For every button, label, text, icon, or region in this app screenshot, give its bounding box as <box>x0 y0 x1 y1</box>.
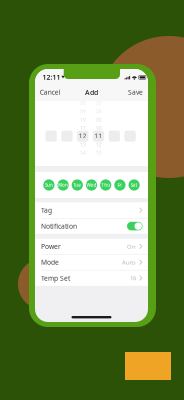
button[interactable]: Sun <box>43 179 54 191</box>
staticText: 07 <box>95 99 101 107</box>
staticText: Cancel <box>40 88 61 97</box>
staticText: 10 <box>80 116 86 123</box>
staticText: Add <box>85 87 98 97</box>
button[interactable]: Mon <box>57 179 69 191</box>
button[interactable]: Temp Set <box>35 270 148 286</box>
staticText: 08 <box>80 99 86 107</box>
staticText: Mon <box>58 182 68 188</box>
staticText: Thu <box>101 182 110 188</box>
staticText: 08 <box>95 107 101 115</box>
staticText: 11 <box>94 132 102 140</box>
staticText: 12 <box>95 141 101 148</box>
staticText: 09 <box>95 116 101 123</box>
staticText: 12 <box>79 132 87 140</box>
staticText: 14 <box>80 149 86 156</box>
staticText: Tag <box>41 206 52 215</box>
button[interactable]: Notification <box>35 218 148 234</box>
staticText: 11 <box>80 124 86 132</box>
staticText: Sat <box>131 182 138 188</box>
button[interactable]: Tag <box>35 202 148 218</box>
staticText: Fri <box>117 182 122 188</box>
staticText: Mode <box>41 258 59 267</box>
button[interactable]: Cancel <box>40 87 66 97</box>
staticText: 10 <box>95 124 101 132</box>
staticText: 12:11 <box>43 73 61 82</box>
staticText: Power <box>41 242 61 251</box>
staticText: 09 <box>80 107 86 115</box>
staticText: On <box>127 242 136 250</box>
staticText: Temp Set <box>41 273 70 283</box>
staticText: Tue <box>73 182 81 188</box>
button[interactable]: Thu <box>100 179 111 191</box>
staticText: 16 <box>130 274 136 282</box>
staticText: 13 <box>95 149 101 156</box>
button[interactable]: Fri <box>114 179 125 191</box>
button[interactable]: Power <box>35 239 148 254</box>
staticText: Sun <box>45 182 53 188</box>
button[interactable]: Mode <box>35 254 148 270</box>
button[interactable]: Tue <box>72 179 83 191</box>
staticText: Auto <box>122 258 136 266</box>
staticText: Wed <box>86 182 96 188</box>
button[interactable]: Wed <box>86 179 97 191</box>
staticText: Notification <box>41 222 77 231</box>
staticText: Save <box>128 88 143 97</box>
staticText: 13 <box>80 141 86 148</box>
button[interactable]: Save <box>121 87 143 97</box>
button[interactable]: Sat <box>128 179 140 191</box>
